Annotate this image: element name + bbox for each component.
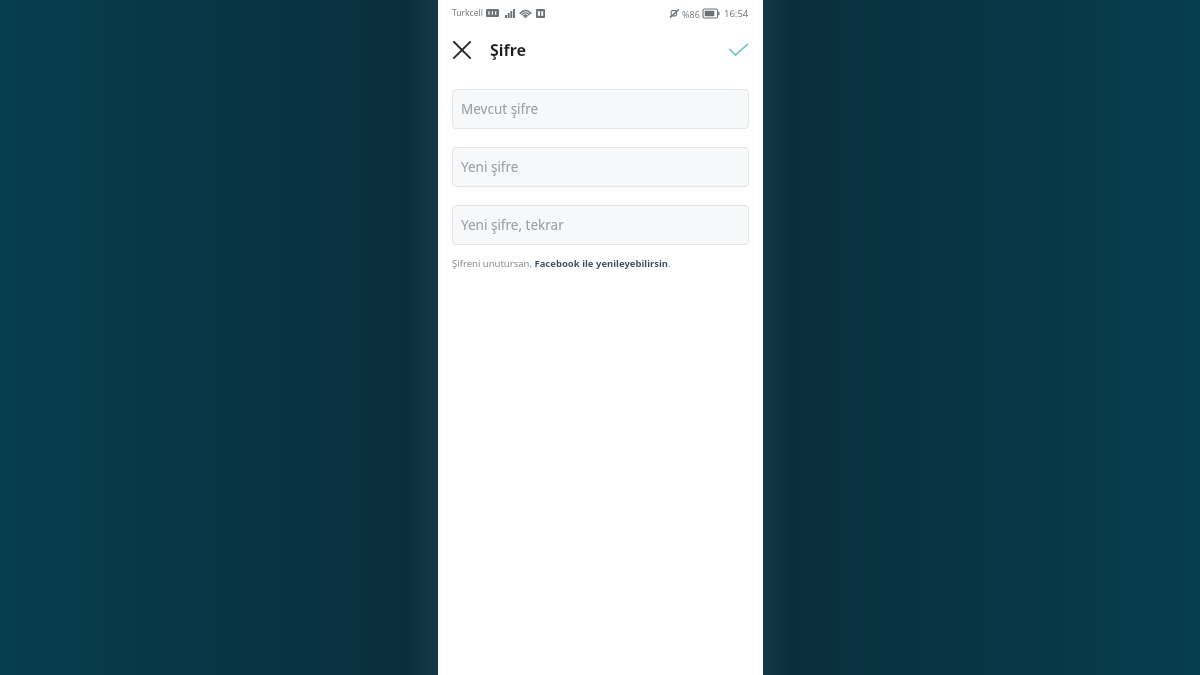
staticText: Şifre: [490, 39, 527, 61]
staticText: Turkcell: [452, 7, 483, 19]
staticText: Yeni şifre, tekrar: [461, 216, 564, 234]
button[interactable]: Mevcut şifre: [452, 89, 749, 129]
staticText: Yeni şifre: [461, 158, 519, 176]
staticText: Mevcut şifre: [461, 100, 539, 118]
button[interactable]: Şifreni unutursan, Facebook ile yenileye…: [452, 257, 749, 270]
staticText: %86: [682, 8, 700, 20]
staticText: Şifreni unutursan, Facebook ile yenileye…: [452, 257, 671, 270]
button[interactable]: Yeni şifre, tekrar: [452, 205, 749, 245]
button[interactable]: Yeni şifre: [452, 147, 749, 187]
button[interactable]: Kaydet: [720, 32, 756, 68]
button[interactable]: Kapat: [444, 32, 480, 68]
staticText: 16:54: [724, 7, 749, 20]
